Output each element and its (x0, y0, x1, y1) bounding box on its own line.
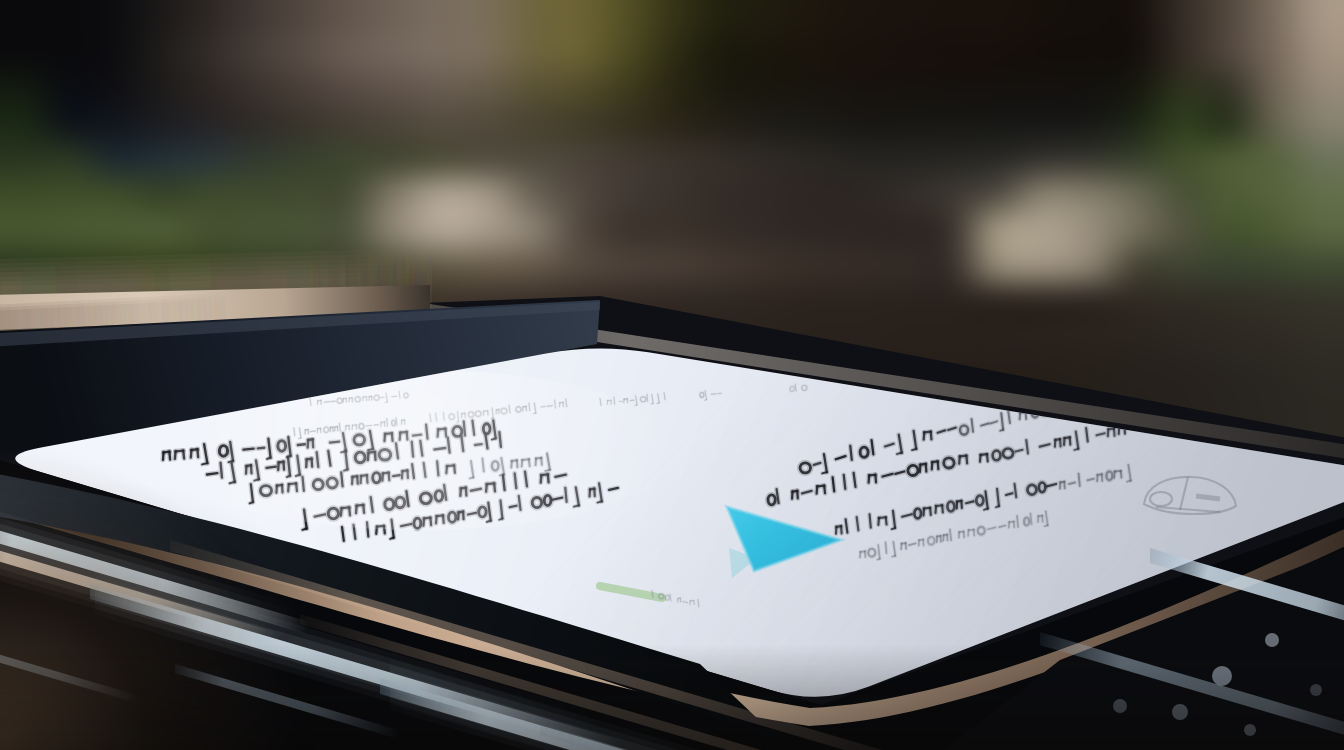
button[interactable]: Smartphone displaying a messaging app (0, 0, 1344, 750)
